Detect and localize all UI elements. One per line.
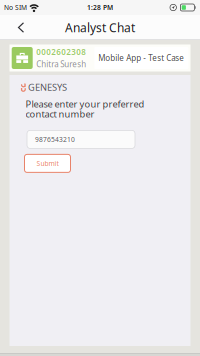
- staticText: No SIM: [4, 3, 27, 12]
- staticText: contact number: [25, 108, 94, 120]
- staticText: Submit: [36, 159, 58, 168]
- button[interactable]: Back: [9, 15, 33, 40]
- staticText: Mobile App - Test Case: [98, 53, 184, 63]
- staticText: 1:28 PM: [87, 3, 113, 12]
- staticText: 9876543210: [35, 135, 75, 144]
- staticText: GENESYS: [28, 81, 67, 93]
- staticText: Please enter your preferred: [25, 98, 144, 110]
- staticText: Analyst Chat: [65, 19, 135, 35]
- staticText: Chitra Suresh: [36, 59, 86, 69]
- button[interactable]: Submit: [24, 154, 70, 172]
- staticText: 0002602308: [36, 47, 86, 57]
